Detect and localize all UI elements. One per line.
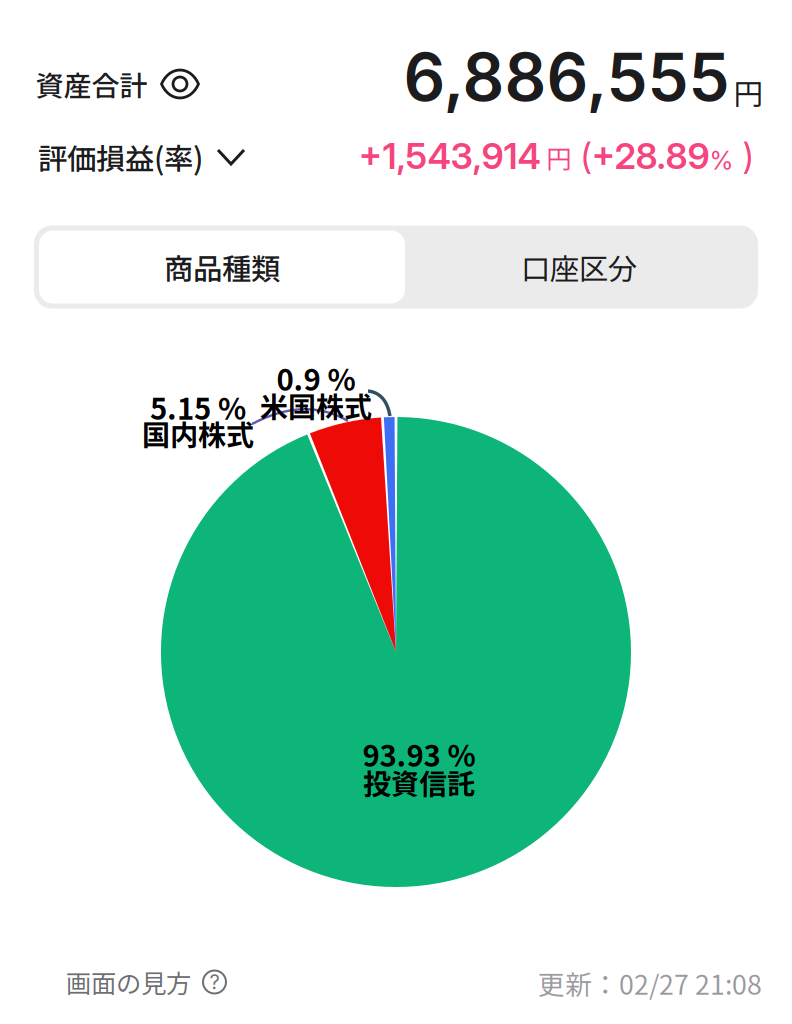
staticText: 評価損益(率) (38, 136, 203, 178)
staticText: ? (209, 970, 219, 994)
staticText: 更新：02/27 21:08 (538, 964, 762, 1002)
staticText: 口座区分 (521, 246, 637, 288)
staticText: 画面の見方 (66, 964, 191, 1000)
staticText: 5.15 % (150, 386, 246, 428)
staticText: ) (733, 134, 753, 178)
staticText: 米国株式 (260, 385, 372, 425)
staticText: ( (571, 134, 591, 178)
staticText: +28.89 (591, 134, 709, 178)
staticText: 資産合計 (35, 64, 147, 104)
staticText: 国内株式 (142, 413, 254, 453)
button[interactable]: 評価損益(率)を切り替え (38, 136, 244, 178)
button[interactable]: 口座区分 (405, 230, 753, 303)
staticText: 93.93 % (362, 733, 475, 775)
staticText: +1,543,914 (358, 134, 540, 178)
staticText: 投資信託 (363, 762, 475, 802)
button[interactable]: 資産合計の表示切替 (35, 64, 198, 104)
staticText: 商品種類 (164, 246, 280, 288)
staticText: 6,886,555 (403, 37, 729, 116)
button[interactable]: 商品種類 (39, 230, 405, 303)
staticText: 円 (540, 139, 571, 176)
staticText: 円 (733, 71, 762, 114)
button[interactable]: 画面の見方 (66, 964, 226, 1000)
staticText: % (709, 145, 733, 176)
staticText: 0.9 % (276, 357, 355, 399)
